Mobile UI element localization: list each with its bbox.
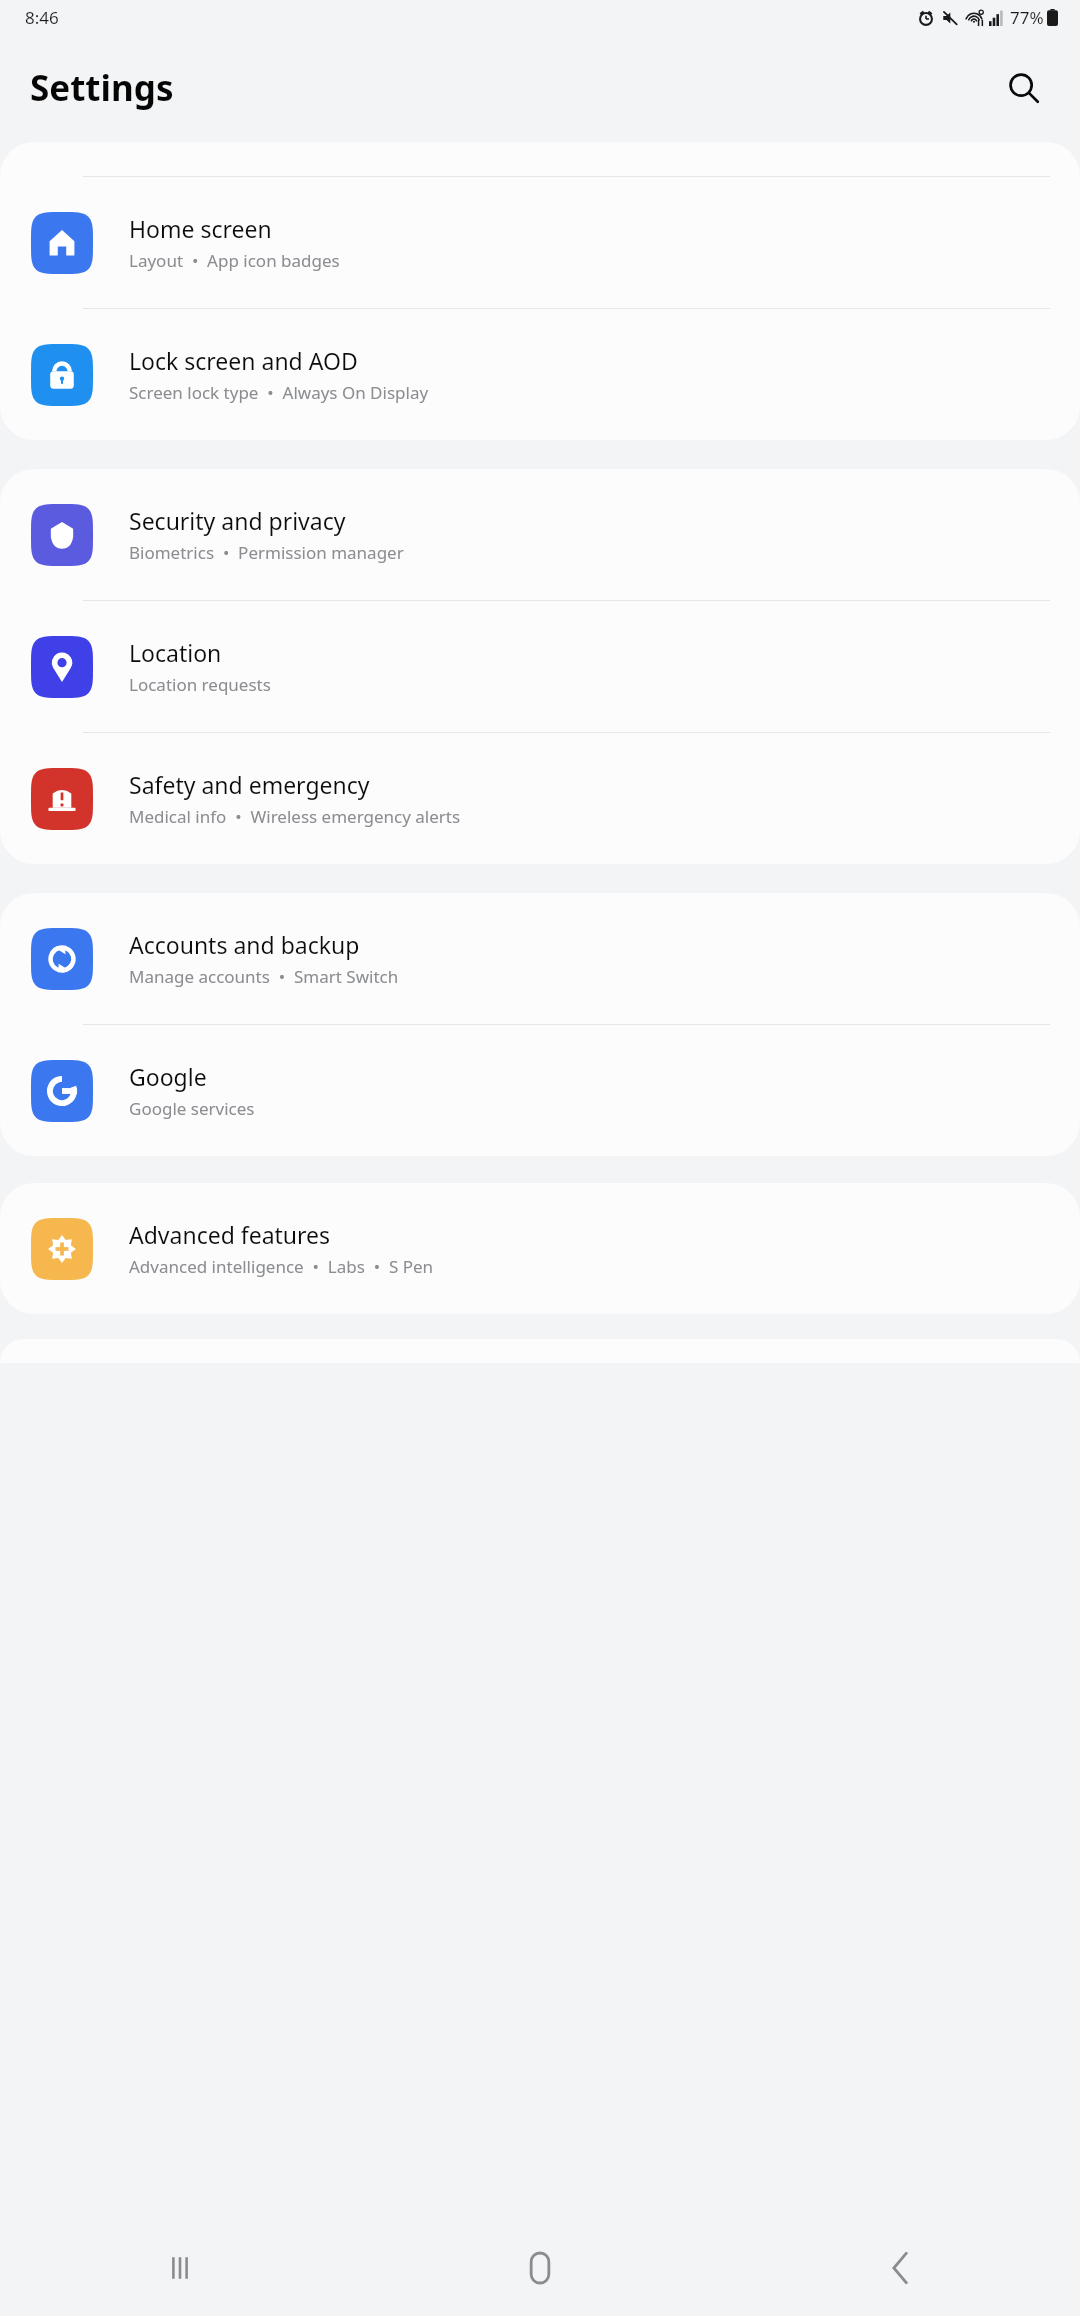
button[interactable]: Search xyxy=(996,60,1052,116)
button[interactable]: Back xyxy=(720,2220,1080,2316)
staticText: Google xyxy=(129,1061,207,1092)
button[interactable]: Advanced features xyxy=(0,1183,1080,1314)
staticText: Advanced intelligence • Labs • S Pen xyxy=(129,1255,434,1278)
button[interactable]: Recents xyxy=(0,2220,360,2316)
staticText: Security and privacy xyxy=(129,505,346,536)
staticText: Safety and emergency xyxy=(129,769,370,800)
staticText: Accounts and backup xyxy=(129,929,360,960)
staticText: Biometrics • Permission manager xyxy=(129,541,404,564)
staticText: Lock screen and AOD xyxy=(129,345,358,376)
staticText: Screen lock type • Always On Display xyxy=(129,381,429,404)
staticText: 8:46 xyxy=(25,6,59,29)
button[interactable]: Google xyxy=(0,1025,1080,1156)
button[interactable]: Location xyxy=(0,601,1080,732)
staticText: Layout • App icon badges xyxy=(129,249,340,272)
button[interactable]: Security and privacy xyxy=(0,469,1080,600)
staticText: Advanced features xyxy=(129,1219,331,1250)
staticText: Location xyxy=(129,637,222,668)
staticText: Location requests xyxy=(129,673,271,696)
staticText: Medical info • Wireless emergency alerts xyxy=(129,805,461,828)
button[interactable]: Lock screen and AOD xyxy=(0,309,1080,440)
button[interactable]: Home xyxy=(360,2220,720,2316)
staticText: Manage accounts • Smart Switch xyxy=(129,965,399,988)
button[interactable]: Accounts and backup xyxy=(0,893,1080,1024)
staticText: 77% xyxy=(1010,6,1044,29)
staticText: Home screen xyxy=(129,213,272,244)
button[interactable]: Home screen xyxy=(0,177,1080,308)
button[interactable]: Safety and emergency xyxy=(0,733,1080,864)
staticText: Google services xyxy=(129,1097,255,1120)
staticText: Settings xyxy=(30,64,174,112)
